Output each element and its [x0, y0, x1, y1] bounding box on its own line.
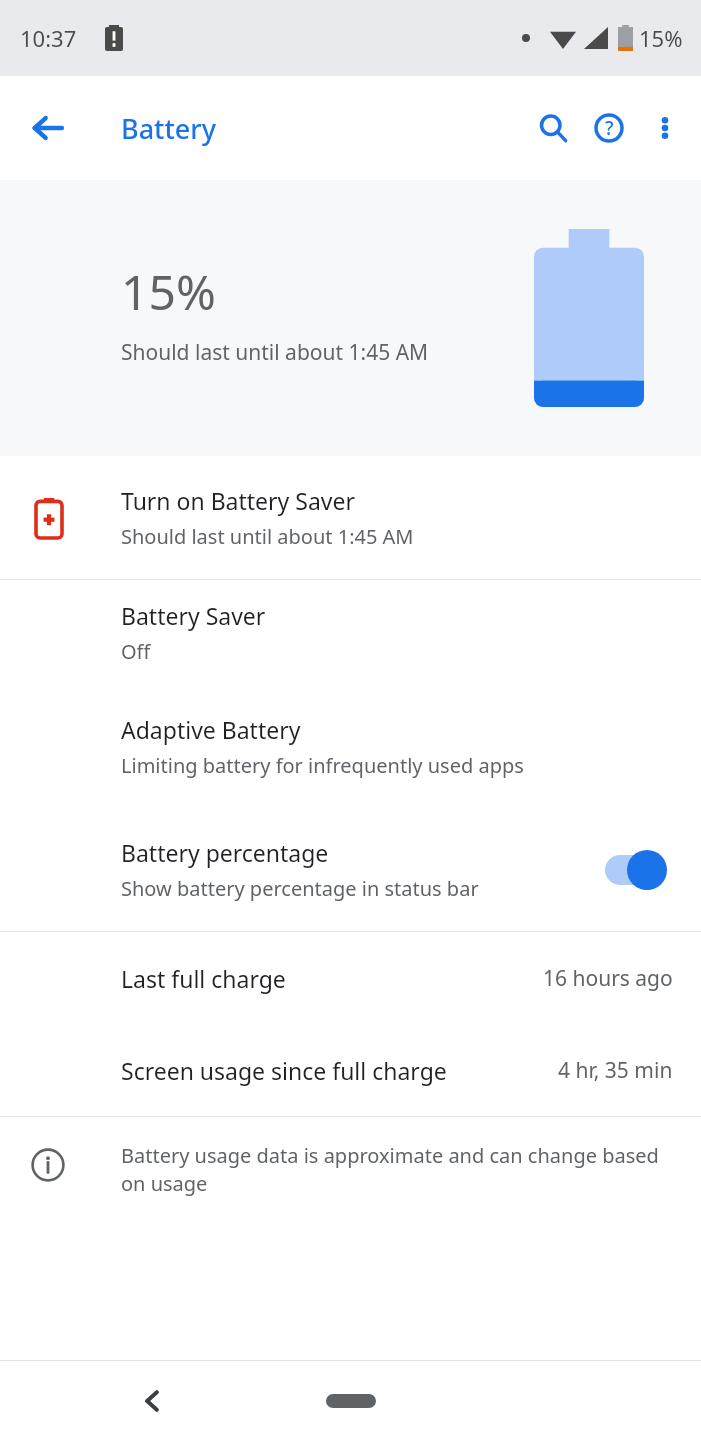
staticText: Show battery percentage in status bar	[121, 875, 479, 902]
staticText: 15%	[121, 259, 216, 324]
staticText: Battery usage data is approximate and ca…	[121, 1142, 677, 1197]
staticText: Battery	[121, 110, 216, 147]
button[interactable]: Turn on Battery Saver	[0, 456, 701, 579]
button[interactable]: Back	[22, 102, 74, 154]
staticText: 16 hours ago	[543, 964, 673, 993]
staticText: Last full charge	[121, 963, 543, 994]
button[interactable]: Battery percentage	[0, 808, 701, 931]
staticText: 10:37	[20, 23, 77, 53]
staticText: Screen usage since full charge	[121, 1055, 558, 1086]
button[interactable]: Adaptive Battery	[0, 685, 701, 808]
staticText: Battery Saver	[121, 600, 266, 631]
staticText: Battery percentage	[121, 837, 329, 868]
button[interactable]: Battery Saver	[0, 580, 701, 685]
staticText: Off	[121, 638, 151, 665]
staticText: Should last until about 1:45 AM	[121, 338, 429, 367]
button[interactable]: Search	[525, 100, 581, 156]
button[interactable]: Help	[581, 100, 637, 156]
button[interactable]: Last full charge	[0, 932, 701, 1024]
button[interactable]: Home	[296, 1383, 406, 1419]
staticText: Limiting battery for infrequently used a…	[121, 752, 524, 779]
staticText: Turn on Battery Saver	[121, 485, 355, 516]
staticText: Should last until about 1:45 AM	[121, 523, 414, 550]
button[interactable]: Screen usage since full charge	[0, 1024, 701, 1116]
button[interactable]: Back	[126, 1375, 178, 1427]
staticText: Adaptive Battery	[121, 714, 301, 745]
staticText: 15%	[639, 23, 683, 53]
button[interactable]: More options	[637, 100, 693, 156]
staticText: 4 hr, 35 min	[558, 1056, 673, 1085]
staticText: ?	[605, 115, 614, 141]
